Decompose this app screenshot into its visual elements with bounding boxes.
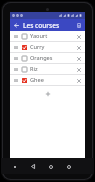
button[interactable]: More options (74, 21, 83, 30)
button[interactable]: Reorder (12, 65, 19, 74)
button[interactable]: Unchecked (20, 65, 28, 73)
button[interactable]: Delete Riz (74, 65, 83, 74)
button[interactable]: Delete Ghee (74, 76, 83, 85)
staticText: Ghee (30, 76, 74, 84)
button[interactable]: Delete Oranges (74, 54, 83, 63)
staticText: Les courses (23, 21, 60, 30)
button[interactable]: Checked (20, 76, 28, 84)
button[interactable]: Delete Curry (74, 43, 83, 52)
button[interactable]: Reorder (10, 42, 85, 52)
button[interactable]: Checked (20, 43, 28, 51)
staticText: Oranges (30, 54, 74, 62)
button[interactable]: Unchecked (20, 54, 28, 62)
button[interactable]: Reorder (12, 43, 19, 52)
button[interactable]: Reorder (10, 53, 85, 63)
staticText: Curry (30, 43, 74, 51)
button[interactable]: Back (28, 162, 37, 171)
button[interactable]: Reorder (10, 31, 85, 41)
staticText: Yaourt (30, 32, 74, 40)
button[interactable]: Reorder (12, 54, 19, 63)
button[interactable]: Keyboard (11, 163, 18, 170)
button[interactable]: Reorder (12, 32, 19, 41)
staticText: Riz (30, 65, 74, 73)
button[interactable]: Add item (43, 89, 53, 99)
button[interactable]: Delete Yaourt (74, 32, 83, 41)
button[interactable]: Reorder (10, 64, 85, 74)
button[interactable]: Reorder (10, 75, 85, 85)
button[interactable]: Reorder (12, 76, 19, 85)
button[interactable]: Navigate up (12, 21, 21, 30)
button[interactable]: Home (46, 162, 55, 171)
button[interactable]: Unchecked (20, 32, 28, 40)
button[interactable]: Recent apps (64, 162, 73, 171)
